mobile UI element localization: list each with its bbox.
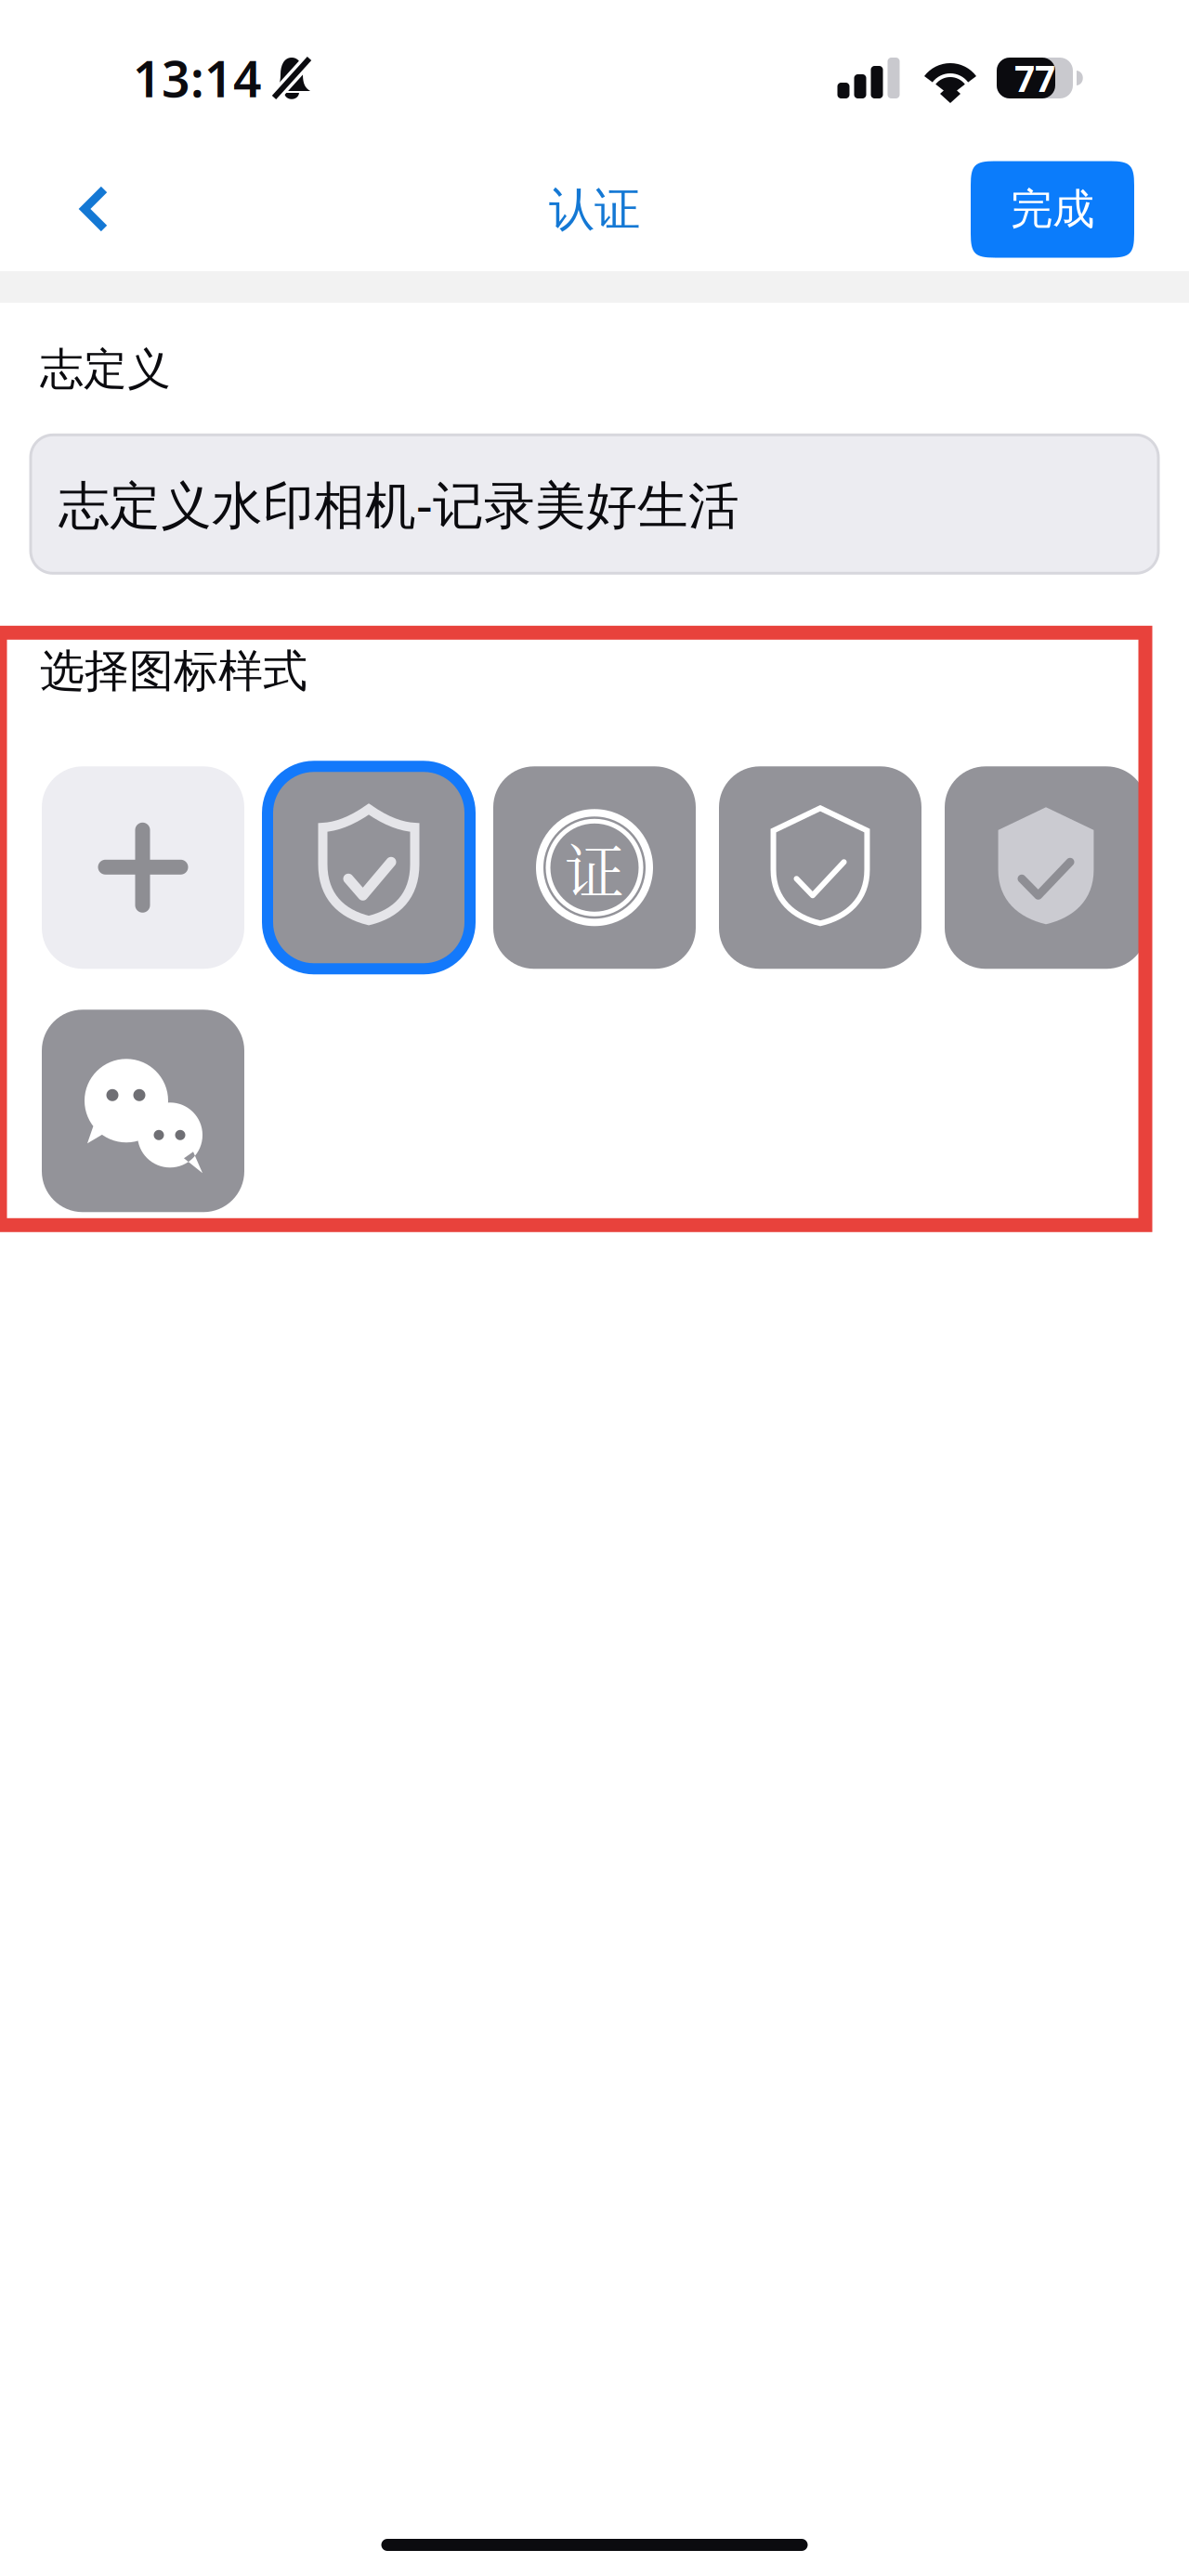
staticText: 77 xyxy=(1014,54,1055,102)
staticText: 13:14 xyxy=(133,45,262,111)
button[interactable]: Filled shield style xyxy=(945,766,1147,969)
staticText: 选择图标样式 xyxy=(40,644,307,699)
staticText: 完成 xyxy=(1011,184,1094,235)
staticText: 志定义水印相机-记录美好生活 xyxy=(59,470,739,538)
button[interactable]: WeChat style xyxy=(42,1010,244,1212)
button[interactable]: 完成 xyxy=(971,161,1134,258)
button[interactable]: Shield style 1 xyxy=(268,766,470,969)
button[interactable]: Seal style xyxy=(493,766,696,969)
button[interactable]: Back xyxy=(0,143,146,275)
button[interactable]: Add icon xyxy=(42,766,244,969)
staticText: 认证 xyxy=(549,181,640,238)
staticText: 证 xyxy=(565,825,624,910)
staticText: 志定义 xyxy=(40,343,171,396)
button[interactable]: Outline shield style xyxy=(719,766,921,969)
